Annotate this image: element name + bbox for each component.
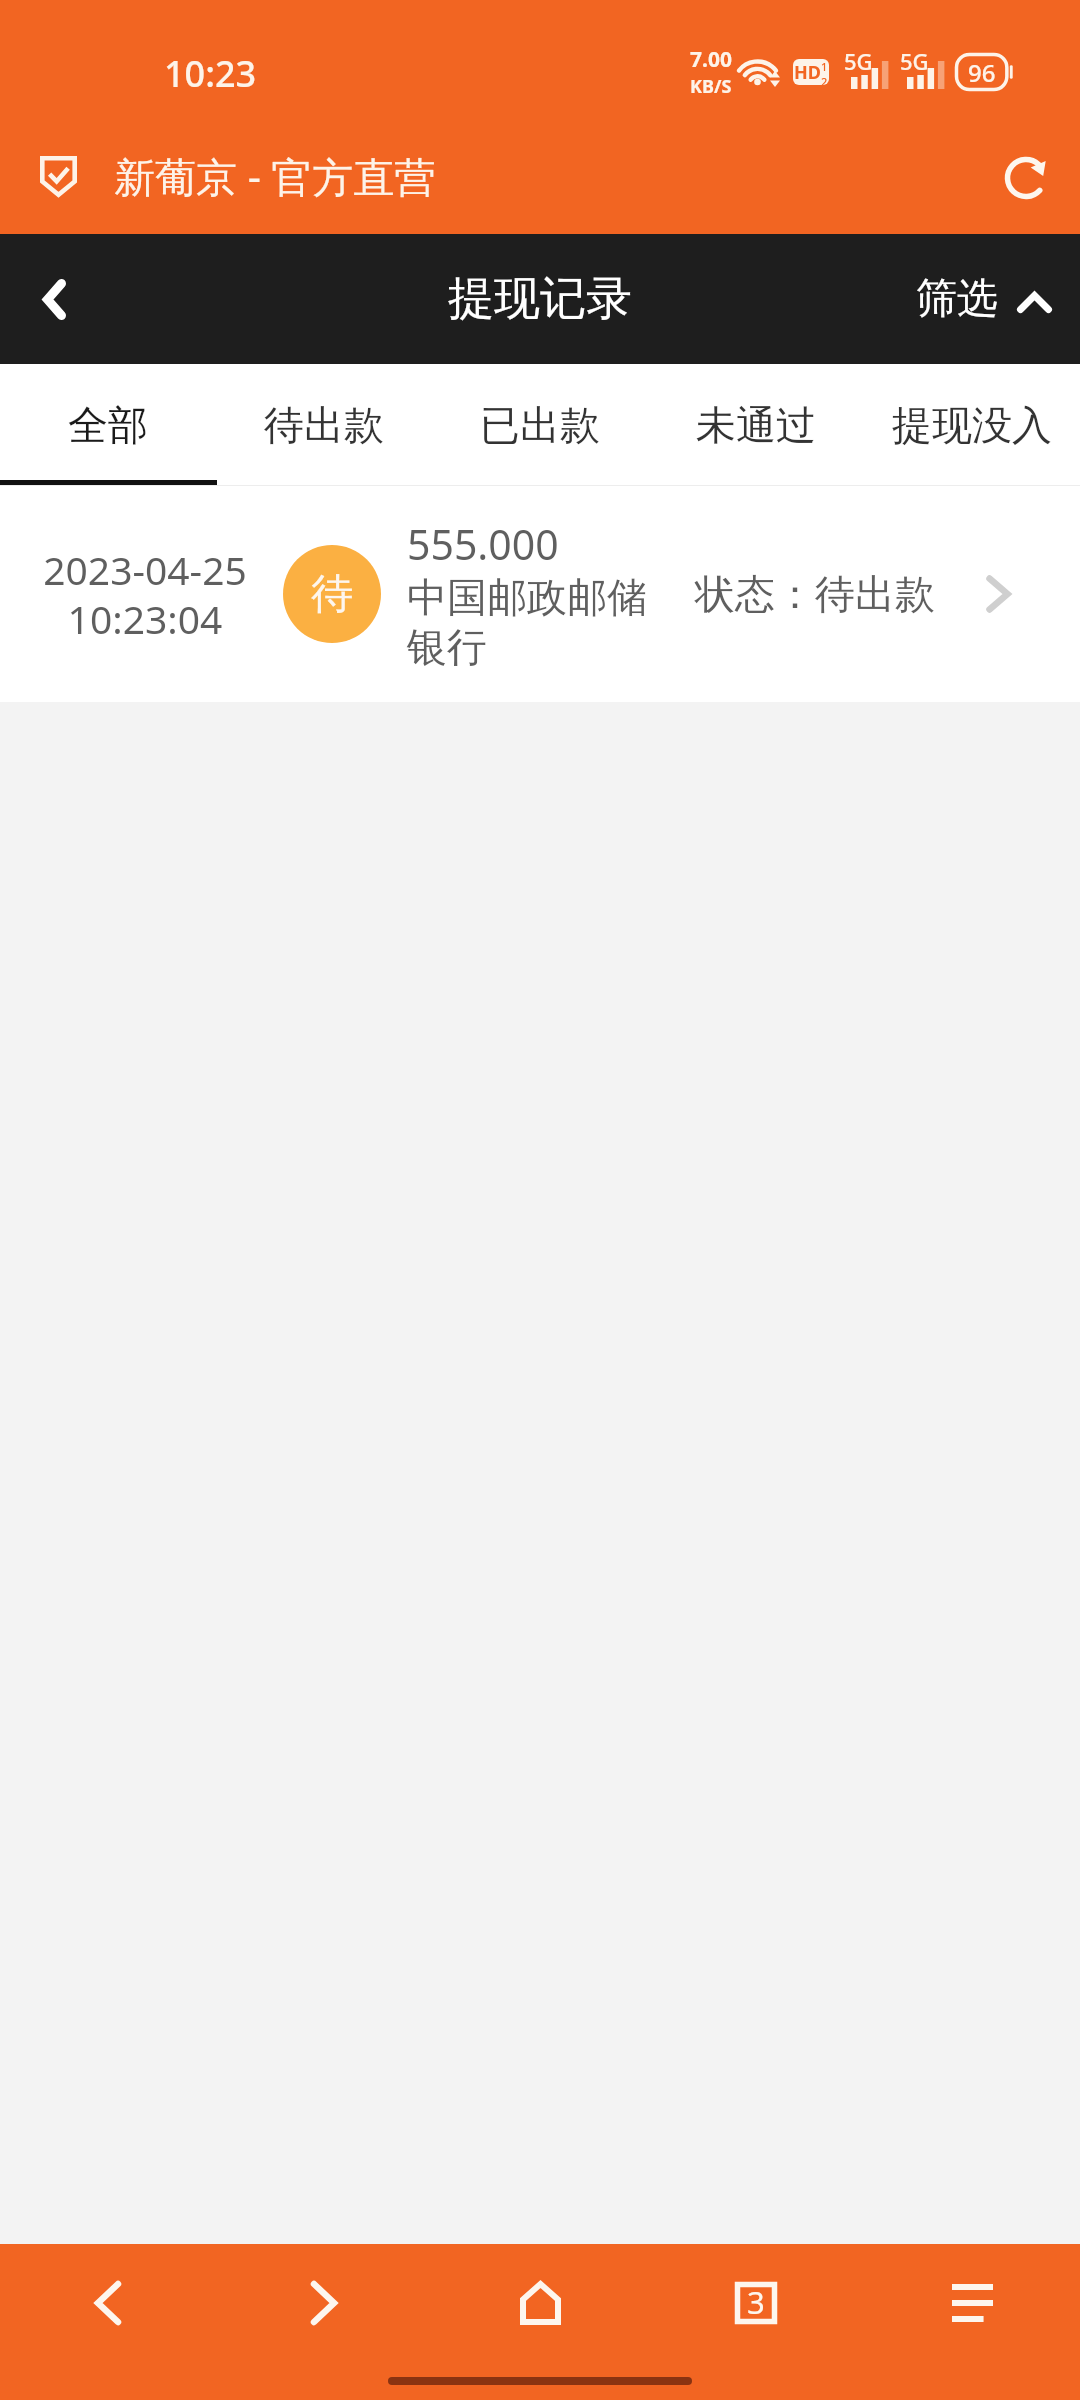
staticText: 待: [311, 568, 353, 621]
staticText: 2: [821, 74, 828, 85]
staticText: 筛选: [916, 273, 998, 325]
staticText: 新葡京 - 官方直营: [114, 148, 436, 204]
button[interactable]: Back: [0, 2244, 216, 2362]
button[interactable]: 筛选: [916, 273, 1052, 325]
button[interactable]: Menu: [864, 2244, 1080, 2362]
staticText: 中国邮政邮储银行: [407, 572, 653, 673]
staticText: 未通过: [696, 400, 816, 450]
staticText: 1: [821, 59, 828, 74]
staticText: 10:23: [164, 49, 257, 98]
staticText: HD: [794, 60, 821, 85]
button[interactable]: 全部: [0, 364, 216, 486]
button[interactable]: 已出款: [432, 364, 648, 486]
staticText: 5G: [900, 46, 929, 76]
staticText: 待出款: [264, 400, 384, 450]
staticText: 3: [747, 2281, 765, 2323]
staticText: KB/S: [690, 74, 732, 99]
button[interactable]: Tabs: [648, 2244, 864, 2362]
staticText: 96: [968, 56, 996, 89]
staticText: 状态：待出款: [695, 569, 935, 619]
button[interactable]: 提现没入: [864, 364, 1080, 486]
button[interactable]: Back: [0, 244, 110, 354]
staticText: 提现记录: [448, 270, 632, 328]
staticText: 全部: [68, 400, 148, 450]
button[interactable]: 未通过: [648, 364, 864, 486]
button[interactable]: Refresh: [994, 146, 1058, 210]
button[interactable]: Home: [432, 2244, 648, 2362]
staticText: 5G: [844, 46, 873, 76]
button[interactable]: 待出款: [216, 364, 432, 486]
button[interactable]: 2023-04-25 10:23:04: [0, 486, 1080, 702]
button[interactable]: Forward: [216, 2244, 432, 2362]
staticText: 2023-04-25 10:23:04: [41, 543, 249, 646]
staticText: 555.000: [407, 516, 559, 572]
staticText: 7.00: [690, 45, 732, 74]
staticText: 提现没入: [892, 400, 1052, 450]
staticText: 已出款: [480, 400, 600, 450]
